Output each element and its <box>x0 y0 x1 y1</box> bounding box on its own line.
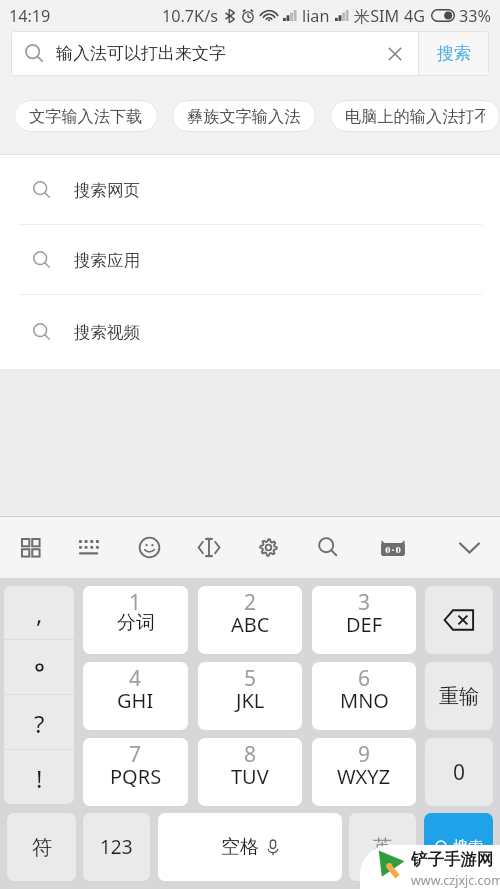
staticText: 10.7K/s <box>162 5 218 27</box>
button[interactable]: Hide keyboard <box>440 517 498 578</box>
staticText: ABC <box>231 611 270 638</box>
staticText: 7 <box>129 740 142 769</box>
button[interactable]: Settings <box>239 517 297 578</box>
staticText: GHI <box>117 687 154 714</box>
button[interactable]: 9 <box>312 738 416 806</box>
staticText: , <box>36 597 43 630</box>
staticText: 4 <box>129 664 142 693</box>
staticText: 符 <box>32 835 52 860</box>
button[interactable]: 文字输入法下载 <box>14 100 158 132</box>
staticText: 搜索网页 <box>74 180 140 201</box>
staticText: 铲子手游网 <box>411 849 493 870</box>
staticText: 0 <box>453 758 466 787</box>
button[interactable]: 6 <box>312 662 416 730</box>
staticText: 5 <box>244 664 257 693</box>
button[interactable]: 5 <box>198 662 302 730</box>
staticText: 搜索应用 <box>74 250 140 271</box>
staticText: www.czjxjc.com <box>411 872 500 889</box>
button[interactable]: 8 <box>198 738 302 806</box>
staticText: 搜索视频 <box>74 322 140 343</box>
button[interactable]: 搜索 <box>424 813 493 881</box>
button[interactable]: Clear <box>371 31 418 76</box>
staticText: 6 <box>358 664 371 693</box>
staticText: TUV <box>231 763 269 790</box>
button[interactable]: Layout grid <box>1 517 59 578</box>
button[interactable]: 2 <box>198 586 302 654</box>
staticText: 输入法可以打出来文字 <box>56 43 226 64</box>
staticText: MNO <box>340 687 389 714</box>
button[interactable]: 搜索 <box>419 31 489 76</box>
button[interactable]: 彝族文字输入法 <box>172 100 316 132</box>
button[interactable]: 123 <box>83 813 150 881</box>
button[interactable]: 电脑上的输入法打不出 <box>330 100 500 132</box>
button[interactable]: 搜索视频 <box>0 295 500 369</box>
button[interactable]: 3 <box>312 586 416 654</box>
button[interactable]: Move cursor <box>180 517 238 578</box>
staticText: 4G <box>404 5 426 27</box>
staticText: ! <box>36 762 43 795</box>
staticText: 空格 <box>221 835 259 859</box>
staticText: 9 <box>358 740 371 769</box>
button[interactable]: 英 <box>349 813 416 881</box>
button[interactable]: Voice input <box>364 517 422 578</box>
staticText: 搜索 <box>437 43 471 64</box>
button[interactable]: , <box>4 586 74 639</box>
button[interactable]: Keyboard <box>60 517 118 578</box>
button[interactable]: Emoji <box>120 517 178 578</box>
staticText: lian <box>302 5 330 27</box>
staticText: 分词 <box>117 611 155 635</box>
staticText: 2 <box>244 588 257 617</box>
staticText: 电脑上的输入法打不出 <box>345 106 485 126</box>
button[interactable]: 0 <box>425 738 493 806</box>
button[interactable]: 1 <box>83 586 188 654</box>
staticText: 重输 <box>439 684 479 709</box>
button[interactable]: Search <box>299 517 357 578</box>
staticText: 1 <box>129 588 142 617</box>
button[interactable]: 搜索应用 <box>0 225 500 295</box>
button[interactable]: 搜索网页 <box>0 155 500 225</box>
staticText: 米SIM <box>354 5 400 27</box>
staticText: 123 <box>100 834 133 860</box>
button[interactable]: 空格 <box>158 813 342 881</box>
staticText: 英 <box>373 835 392 859</box>
staticText: WXYZ <box>337 763 391 790</box>
staticText: JKL <box>236 687 265 714</box>
button[interactable]: 4 <box>83 662 188 730</box>
button[interactable]: Backspace <box>425 586 493 654</box>
button[interactable]: 7 <box>83 738 188 806</box>
staticText: ? <box>34 707 45 740</box>
staticText: 文字输入法下载 <box>29 106 143 126</box>
staticText: PQRS <box>110 763 162 790</box>
staticText: 14:19 <box>9 5 51 27</box>
button[interactable] <box>4 640 74 694</box>
staticText: DEF <box>346 611 383 638</box>
staticText: 3 <box>358 588 371 617</box>
button[interactable]: ? <box>4 695 74 749</box>
button[interactable]: 重输 <box>425 662 493 730</box>
staticText: 彝族文字输入法 <box>187 106 301 126</box>
staticText: 搜索 <box>453 838 483 857</box>
button[interactable]: ! <box>4 750 74 804</box>
button[interactable]: 符 <box>7 813 76 881</box>
staticText: 33% <box>459 5 491 27</box>
staticText: 8 <box>244 740 257 769</box>
